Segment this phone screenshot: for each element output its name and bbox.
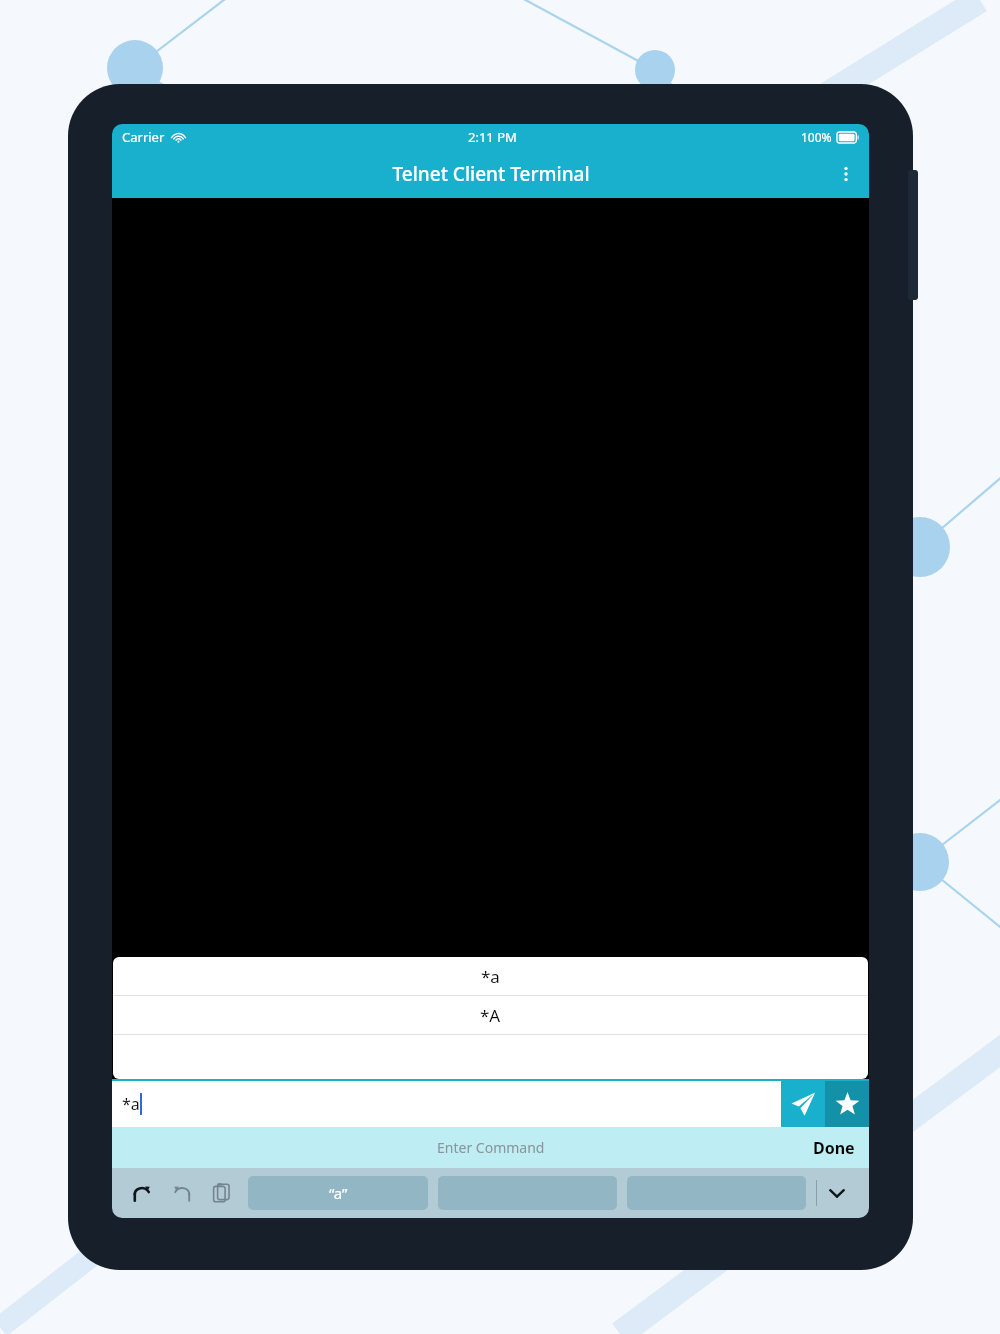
button[interactable]: Done [813, 1137, 855, 1159]
button[interactable]: Favorites [825, 1081, 869, 1127]
staticText: 2:11 PM [468, 128, 517, 146]
staticText: *a [481, 965, 500, 988]
button[interactable]: Undo [124, 1175, 160, 1211]
button[interactable]: *a [122, 1081, 781, 1127]
staticText: Telnet Client Terminal [392, 161, 590, 187]
staticText: 100% [801, 129, 832, 145]
button[interactable]: “a” [248, 1176, 428, 1210]
staticText: *A [480, 1004, 501, 1027]
button[interactable]: More options [823, 151, 869, 197]
button[interactable]: Send [781, 1081, 825, 1127]
staticText: *a [122, 1093, 140, 1115]
button[interactable]: Redo [164, 1175, 200, 1211]
staticText: Carrier [122, 128, 165, 146]
button[interactable]: *a [113, 957, 868, 995]
button[interactable]: Hide keyboard [817, 1173, 857, 1213]
staticText: “a” [329, 1183, 348, 1203]
button[interactable]: *A [113, 996, 868, 1034]
button[interactable]: Paste [204, 1175, 240, 1211]
staticText: Enter Command [437, 1138, 545, 1157]
staticText: Done [813, 1137, 855, 1159]
